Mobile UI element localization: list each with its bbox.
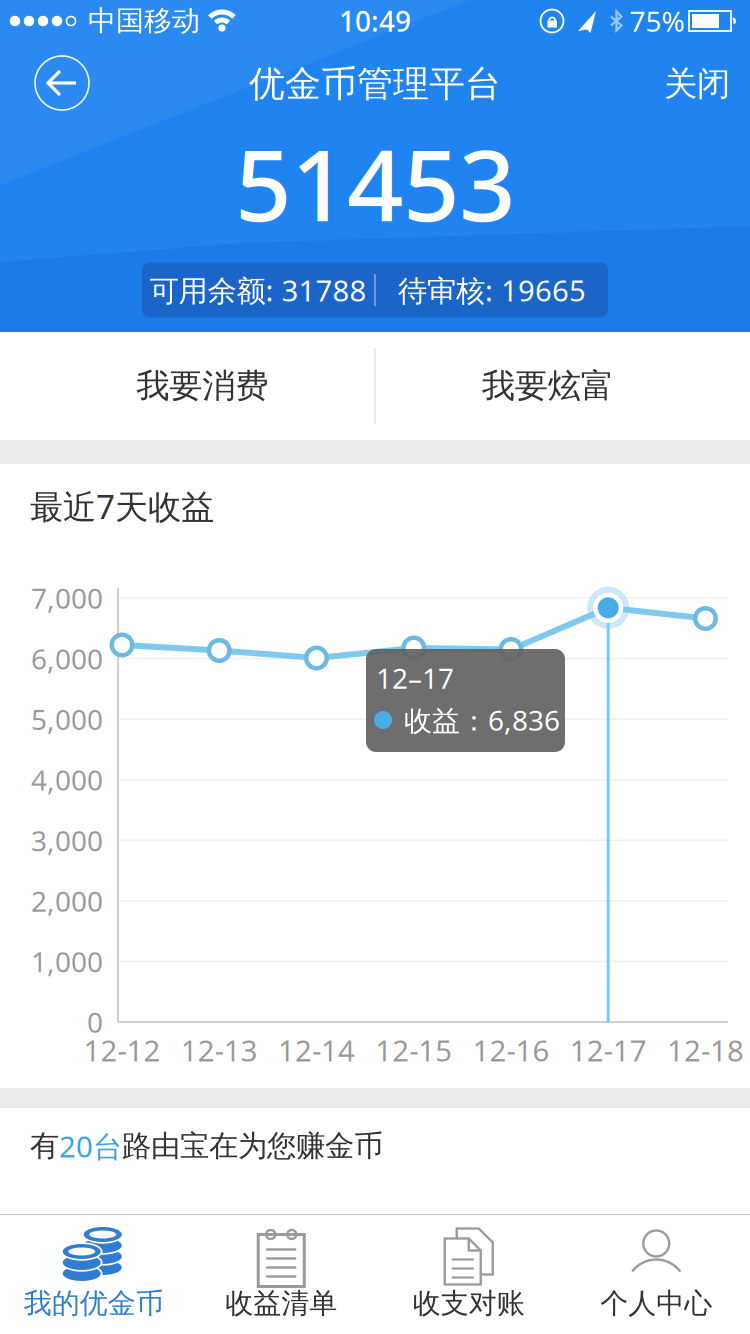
button[interactable]: 关闭 <box>642 52 750 116</box>
staticText: 收支对账 <box>413 1286 525 1321</box>
staticText: 12-15 <box>375 1030 452 1069</box>
button[interactable]: 个人中心 <box>562 1215 750 1334</box>
staticText: 10:49 <box>339 2 411 40</box>
staticText: 4,000 <box>31 761 103 798</box>
staticText: 我要消费 <box>136 365 268 406</box>
staticText: 收益：6,836 <box>404 701 560 739</box>
button[interactable]: 收益清单 <box>187 1215 375 1334</box>
staticText: 优金币管理平台 <box>249 62 501 106</box>
staticText: 有 <box>30 1128 59 1164</box>
staticText: 1,000 <box>31 943 103 980</box>
staticText: 5,000 <box>31 701 103 738</box>
staticText: 0 <box>87 1003 103 1041</box>
staticText: 12-16 <box>472 1030 549 1069</box>
staticText: 75% <box>629 2 684 40</box>
staticText: 我要炫富 <box>482 365 614 406</box>
staticText: 路由宝在为您赚金币 <box>122 1128 383 1164</box>
button[interactable]: 我要炫富 <box>376 332 750 440</box>
staticText: 7,000 <box>31 579 103 617</box>
staticText: 中国移动 <box>88 4 200 38</box>
staticText: 个人中心 <box>600 1286 712 1321</box>
staticText: 12-12 <box>83 1030 160 1069</box>
button[interactable] <box>34 55 90 111</box>
staticText: 我的优金币 <box>24 1286 164 1321</box>
staticText: 2,000 <box>31 882 103 919</box>
staticText: 12-17 <box>570 1030 647 1069</box>
staticText: 收益清单 <box>225 1286 337 1321</box>
button[interactable]: 收支对账 <box>375 1215 562 1334</box>
staticText: 6,000 <box>31 640 103 677</box>
staticText: 12-18 <box>667 1030 744 1069</box>
staticText: 关闭 <box>664 63 730 104</box>
staticText: 待审核: 19665 <box>398 270 586 309</box>
button[interactable]: 我要消费 <box>0 332 374 440</box>
button[interactable]: 我的优金币 <box>0 1215 187 1334</box>
staticText: 51453 <box>235 117 515 248</box>
staticText: 12-14 <box>278 1030 355 1069</box>
staticText: 最近7天收益 <box>30 484 214 528</box>
staticText: 12-13 <box>181 1030 258 1069</box>
staticText: 12–17 <box>376 659 454 697</box>
staticText: 20台 <box>59 1126 122 1165</box>
staticText: 3,000 <box>31 822 103 859</box>
staticText: 可用余额: 31788 <box>149 270 366 309</box>
